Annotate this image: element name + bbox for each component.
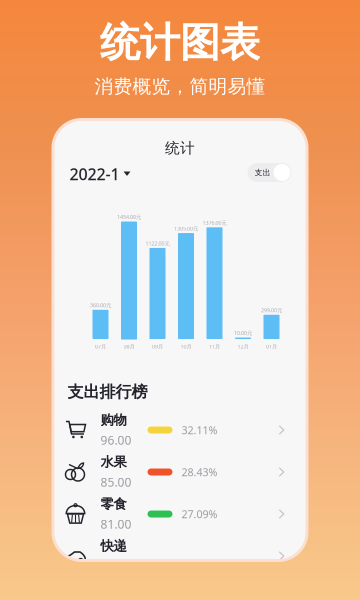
button[interactable]: 快递: [54, 535, 305, 577]
staticText: 1305.00元: [174, 225, 198, 232]
button[interactable]: 购物: [54, 409, 305, 451]
button[interactable]: 2022-1: [69, 166, 130, 182]
staticText: 12月: [237, 343, 248, 350]
staticText: 消费概览，简明易懂: [94, 75, 265, 98]
button[interactable]: 水果: [54, 451, 305, 493]
staticText: 32.11%: [181, 423, 217, 437]
staticText: 10.00元: [234, 329, 252, 336]
staticText: 01月: [266, 343, 277, 350]
staticText: 360.00元: [90, 302, 111, 309]
staticText: 85.00: [100, 474, 131, 490]
staticText: 11月: [209, 343, 220, 350]
staticText: 购物: [100, 412, 126, 428]
staticText: 统计图表: [100, 18, 260, 67]
staticText: 水果: [100, 454, 126, 470]
staticText: 1122.00元: [145, 240, 169, 247]
staticText: 27.09%: [181, 507, 217, 521]
button[interactable]: 零食: [54, 493, 305, 535]
staticText: 07月: [95, 343, 106, 350]
staticText: 支出排行榜: [67, 382, 147, 402]
staticText: 81.00: [100, 516, 131, 532]
staticText: 299.00元: [261, 307, 282, 314]
staticText: 零食: [100, 496, 126, 512]
staticText: 2022-1: [69, 163, 119, 185]
staticText: 10月: [180, 343, 191, 350]
staticText: 08月: [123, 343, 134, 350]
staticText: 28.43%: [181, 465, 217, 479]
button[interactable]: 支出: [247, 163, 291, 182]
staticText: 统计: [165, 139, 195, 157]
staticText: 支出: [254, 168, 270, 177]
staticText: 09月: [152, 343, 163, 350]
staticText: 1454.00元: [117, 213, 141, 221]
staticText: 快递: [100, 538, 126, 554]
staticText: 1376.00元: [202, 219, 226, 226]
staticText: 96.00: [100, 432, 131, 448]
